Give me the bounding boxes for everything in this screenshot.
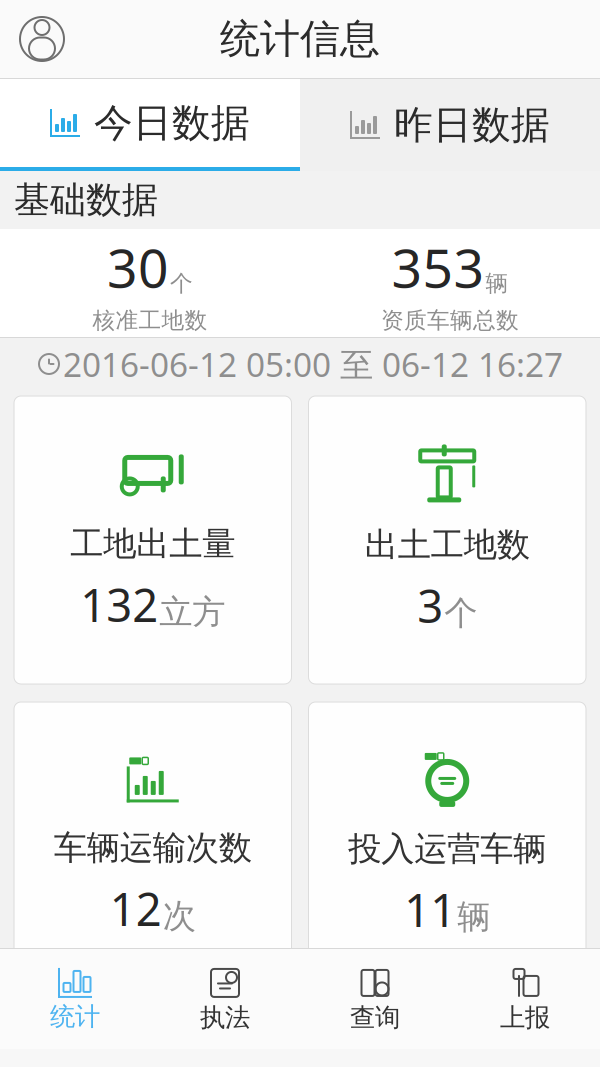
staticText: 30: [107, 232, 169, 302]
staticText: 统计信息: [220, 14, 380, 63]
button[interactable]: 今日数据: [0, 79, 300, 171]
staticText: 个: [170, 270, 193, 297]
button[interactable]: 执法: [150, 959, 300, 1039]
staticText: 工地出土量: [70, 523, 235, 564]
staticText: 次: [163, 896, 196, 936]
staticText: 核准工地数: [92, 306, 207, 334]
button[interactable]: 工地出土量: [14, 396, 291, 684]
staticText: 3: [417, 575, 443, 636]
button[interactable]: 出土工地数: [308, 396, 586, 684]
staticText: 昨日数据: [394, 101, 550, 149]
button[interactable]: 统计: [0, 960, 150, 1038]
staticText: 辆: [485, 270, 508, 297]
staticText: 基础数据: [14, 178, 158, 222]
staticText: 353: [391, 232, 484, 302]
staticText: 11: [404, 879, 456, 940]
staticText: 统计: [50, 1001, 100, 1032]
button[interactable]: 投入运营车辆: [308, 702, 586, 990]
staticText: 上报: [500, 1002, 550, 1033]
staticText: 辆: [457, 897, 490, 937]
staticText: 个: [444, 593, 477, 633]
button[interactable]: Profile: [0, 0, 76, 78]
staticText: 资质车辆总数: [381, 306, 519, 334]
staticText: 投入运营车辆: [348, 828, 546, 869]
staticText: 2016-06-12 05:00 至 06-12 16:27: [63, 342, 563, 386]
button[interactable]: 上报: [450, 959, 600, 1039]
staticText: 132: [80, 574, 158, 635]
button[interactable]: 车辆运输次数: [14, 702, 291, 990]
button[interactable]: 查询: [300, 959, 450, 1039]
staticText: 查询: [350, 1002, 400, 1033]
staticText: 车辆运输次数: [54, 827, 252, 868]
button[interactable]: 昨日数据: [300, 79, 600, 171]
staticText: 12: [110, 878, 162, 939]
staticText: 执法: [200, 1002, 250, 1033]
staticText: 立方: [159, 592, 225, 632]
staticText: 今日数据: [94, 99, 250, 147]
staticText: 出土工地数: [365, 524, 530, 565]
